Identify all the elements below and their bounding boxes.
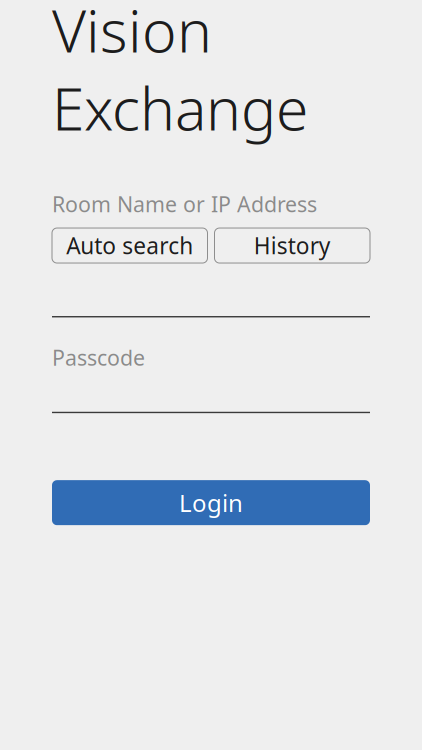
staticText: Passcode	[52, 343, 145, 372]
staticText: History	[254, 230, 331, 261]
staticText: Vision Exchange	[52, 0, 308, 147]
staticText: Auto search	[66, 230, 193, 261]
button[interactable]: Login	[52, 480, 370, 525]
button[interactable]: Auto search	[52, 228, 207, 263]
button[interactable]: History	[214, 228, 370, 263]
staticText: Room Name or IP Address	[52, 190, 317, 218]
staticText: Login	[179, 487, 243, 519]
